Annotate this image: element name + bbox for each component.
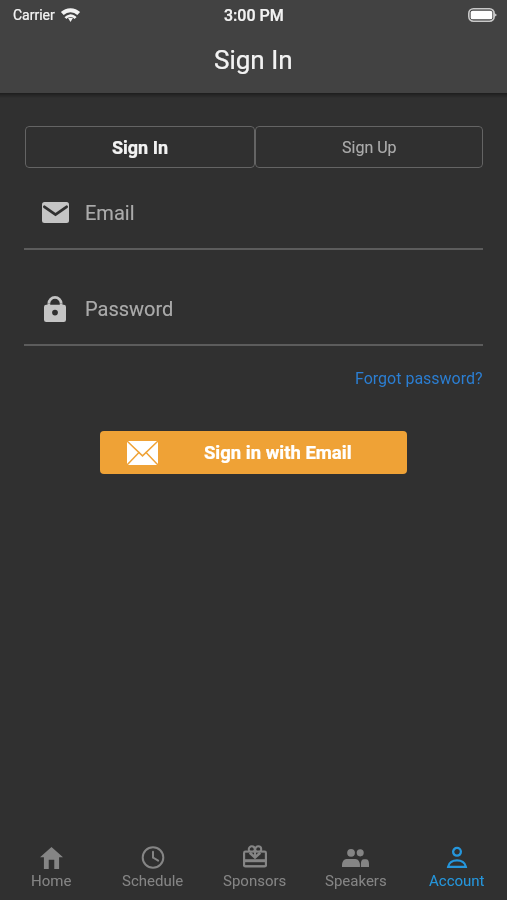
staticText: 3:00 PM	[224, 6, 284, 25]
button[interactable]: Sign In	[25, 126, 255, 168]
staticText: Sign in with Email	[204, 442, 352, 464]
button[interactable]: Email	[24, 188, 483, 236]
button[interactable]: Sponsors	[204, 838, 305, 900]
button[interactable]: Forgot password?	[352, 366, 483, 390]
staticText: Home	[31, 872, 72, 890]
staticText: Sign In	[112, 137, 169, 158]
staticText: Carrier	[13, 7, 55, 23]
staticText: Sign In	[214, 45, 293, 75]
button[interactable]: Password	[24, 282, 483, 330]
staticText: Email	[85, 201, 135, 224]
button[interactable]: Home	[0, 838, 102, 900]
staticText: Forgot password?	[355, 369, 483, 388]
button[interactable]: Account	[406, 838, 507, 900]
button[interactable]: Sign in with Email	[100, 431, 407, 474]
staticText: Speakers	[325, 872, 387, 890]
button[interactable]: Sign Up	[255, 126, 483, 168]
staticText: Sponsors	[223, 872, 287, 890]
staticText: Schedule	[122, 872, 184, 890]
button[interactable]: Schedule	[102, 838, 204, 900]
button[interactable]: Speakers	[305, 838, 406, 900]
staticText: Account	[429, 872, 485, 890]
staticText: Sign Up	[342, 138, 397, 157]
staticText: Password	[85, 297, 174, 320]
